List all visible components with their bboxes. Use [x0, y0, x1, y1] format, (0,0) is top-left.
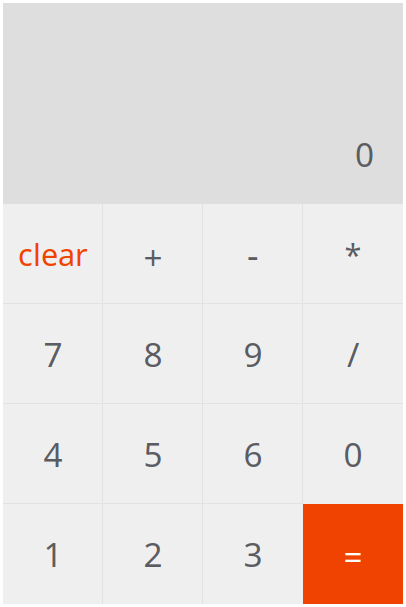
staticText: 7 — [43, 332, 62, 376]
button[interactable]: 9 — [203, 304, 303, 404]
button[interactable]: 6 — [203, 404, 303, 504]
button[interactable]: 0 — [303, 404, 403, 504]
button[interactable]: Divide — [303, 304, 403, 404]
button[interactable]: 2 — [103, 504, 203, 604]
staticText: 0 — [343, 432, 362, 476]
staticText: * — [344, 234, 361, 274]
button[interactable]: Multiply — [303, 204, 403, 304]
staticText: + — [143, 235, 162, 279]
button[interactable]: 7 — [3, 304, 103, 404]
staticText: = — [343, 534, 362, 578]
button[interactable]: Clear — [3, 204, 103, 304]
staticText: - — [247, 230, 259, 278]
staticText: 9 — [243, 332, 262, 376]
staticText: 3 — [243, 532, 262, 576]
staticText: 1 — [43, 532, 62, 576]
button[interactable]: 5 — [103, 404, 203, 504]
button[interactable]: 1 — [3, 504, 103, 604]
staticText: 6 — [243, 432, 262, 476]
staticText: 0 — [355, 132, 374, 176]
staticText: clear — [18, 234, 88, 274]
button[interactable]: Add — [103, 204, 203, 304]
staticText: 4 — [43, 432, 62, 476]
button[interactable]: 3 — [203, 504, 303, 604]
button[interactable]: Subtract — [203, 204, 303, 304]
staticText: 5 — [143, 432, 162, 476]
button[interactable]: Equals — [303, 504, 403, 604]
button[interactable]: 4 — [3, 404, 103, 504]
staticText: 8 — [143, 332, 162, 376]
staticText: 2 — [143, 532, 162, 576]
staticText: / — [347, 332, 359, 376]
button[interactable]: 8 — [103, 304, 203, 404]
